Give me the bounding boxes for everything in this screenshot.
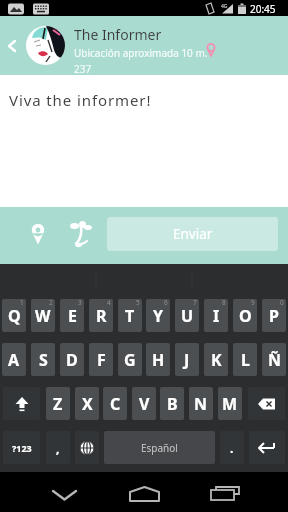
button[interactable]: X bbox=[75, 387, 99, 420]
staticText: 20:45 bbox=[250, 2, 276, 16]
staticText: O bbox=[239, 305, 252, 327]
staticText: U bbox=[181, 305, 194, 327]
button[interactable]: F bbox=[89, 343, 113, 376]
staticText: D bbox=[66, 349, 78, 371]
button[interactable]: U bbox=[175, 299, 199, 332]
button[interactable] bbox=[200, 472, 248, 512]
staticText: 237 bbox=[74, 62, 92, 76]
staticText: Q bbox=[8, 305, 21, 327]
button[interactable]: S bbox=[31, 343, 55, 376]
button[interactable]: K bbox=[204, 343, 228, 376]
staticText: ?123 bbox=[12, 442, 32, 454]
staticText: V bbox=[139, 393, 150, 415]
button[interactable]: V bbox=[132, 387, 156, 420]
staticText: I bbox=[213, 305, 220, 327]
button[interactable]: Y bbox=[146, 299, 170, 332]
staticText: The Informer bbox=[74, 25, 162, 44]
staticText: Viva the informer! bbox=[9, 90, 152, 110]
button[interactable]: ?123 bbox=[3, 431, 40, 464]
button[interactable]: O bbox=[233, 299, 257, 332]
button[interactable] bbox=[3, 387, 40, 420]
staticText: Z bbox=[53, 393, 63, 415]
button[interactable]: . bbox=[220, 431, 244, 464]
staticText: 1 bbox=[20, 299, 24, 307]
button[interactable] bbox=[26, 26, 65, 65]
button[interactable]: C bbox=[103, 387, 127, 420]
staticText: C bbox=[110, 393, 121, 415]
staticText: Enviar bbox=[173, 225, 213, 243]
staticText: F bbox=[97, 349, 106, 371]
button[interactable] bbox=[66, 219, 96, 249]
staticText: L bbox=[241, 349, 250, 371]
staticText: , bbox=[56, 440, 60, 456]
staticText: 5 bbox=[136, 299, 140, 307]
button[interactable] bbox=[40, 472, 88, 512]
button[interactable]: Español bbox=[104, 431, 215, 464]
button[interactable]: W bbox=[31, 299, 55, 332]
button[interactable]: E bbox=[60, 299, 84, 332]
button[interactable]: R bbox=[89, 299, 113, 332]
button[interactable]: P bbox=[262, 299, 286, 332]
button[interactable]: H bbox=[146, 343, 170, 376]
button[interactable] bbox=[27, 223, 49, 249]
staticText: J bbox=[184, 349, 190, 371]
button[interactable]: D bbox=[60, 343, 84, 376]
staticText: A bbox=[8, 349, 20, 371]
button[interactable]: Enviar bbox=[107, 217, 278, 251]
button[interactable]: I bbox=[204, 299, 228, 332]
staticText: Ñ bbox=[268, 349, 281, 371]
button[interactable]: Z bbox=[46, 387, 70, 420]
staticText: 3 bbox=[78, 299, 82, 307]
button[interactable]: N bbox=[189, 387, 213, 420]
staticText: R bbox=[96, 305, 107, 327]
staticText: 6 bbox=[164, 299, 168, 307]
staticText: 7 bbox=[193, 299, 197, 307]
button[interactable]: Ñ bbox=[262, 343, 286, 376]
staticText: 0 bbox=[280, 299, 284, 307]
button[interactable]: T bbox=[118, 299, 142, 332]
button[interactable]: A bbox=[2, 343, 26, 376]
button[interactable]: G bbox=[118, 343, 142, 376]
staticText: X bbox=[82, 393, 93, 415]
staticText: M bbox=[222, 393, 238, 415]
staticText: K bbox=[211, 349, 222, 371]
staticText: 2 bbox=[49, 299, 53, 307]
staticText: B bbox=[167, 393, 178, 415]
button[interactable] bbox=[248, 387, 285, 420]
button[interactable]: B bbox=[160, 387, 184, 420]
staticText: 4G bbox=[221, 3, 228, 10]
staticText: . bbox=[230, 440, 234, 456]
staticText: 4 bbox=[107, 299, 111, 307]
staticText: Y bbox=[153, 305, 164, 327]
staticText: W bbox=[35, 305, 51, 327]
button[interactable]: L bbox=[233, 343, 257, 376]
button[interactable]: M bbox=[218, 387, 242, 420]
staticText: P bbox=[269, 305, 279, 327]
staticText: 8 bbox=[222, 299, 226, 307]
button[interactable] bbox=[249, 431, 285, 464]
staticText: Español bbox=[141, 441, 178, 455]
staticText: 9 bbox=[251, 299, 255, 307]
button[interactable] bbox=[120, 472, 168, 512]
button[interactable]: , bbox=[46, 431, 70, 464]
button[interactable] bbox=[75, 431, 99, 464]
staticText: H bbox=[152, 349, 165, 371]
staticText: G bbox=[124, 349, 136, 371]
staticText: Ubicación aproximada 10 m. bbox=[74, 46, 208, 60]
staticText: S bbox=[39, 349, 48, 371]
button[interactable] bbox=[0, 34, 24, 58]
staticText: E bbox=[68, 305, 77, 327]
button[interactable]: Q bbox=[2, 299, 26, 332]
staticText: T bbox=[125, 305, 135, 327]
button[interactable]: J bbox=[175, 343, 199, 376]
staticText: N bbox=[194, 393, 208, 415]
